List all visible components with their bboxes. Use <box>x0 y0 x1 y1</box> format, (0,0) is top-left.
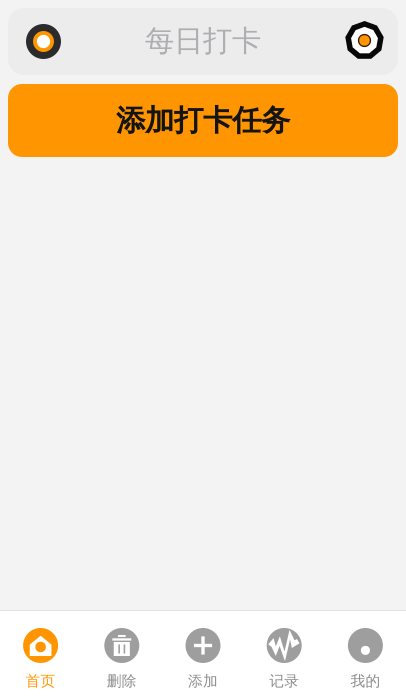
staticText: 删除 <box>107 672 137 690</box>
staticText: 我的 <box>350 672 380 690</box>
button[interactable]: 首页 <box>0 613 81 696</box>
button[interactable]: 记录 <box>244 613 325 696</box>
button[interactable]: 账号 <box>8 16 69 67</box>
staticText: 每日打卡 <box>145 23 261 59</box>
button[interactable]: 设置 <box>337 18 398 65</box>
button[interactable]: 删除 <box>81 613 162 696</box>
staticText: 记录 <box>269 672 299 690</box>
staticText: 添加打卡任务 <box>116 102 290 138</box>
button[interactable]: 添加打卡任务 <box>8 84 398 157</box>
staticText: 添加 <box>188 672 218 690</box>
button[interactable]: 我的 <box>325 613 406 696</box>
button[interactable]: 添加 <box>162 613 244 696</box>
staticText: 首页 <box>26 672 56 690</box>
